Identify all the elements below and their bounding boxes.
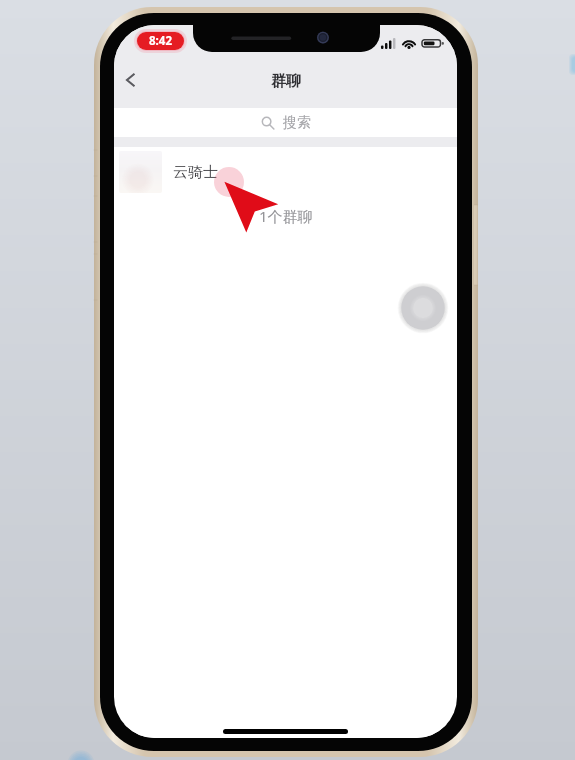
button[interactable]: Recording 8:42 — [137, 32, 184, 50]
staticText: 1个群聊 — [259, 206, 313, 226]
staticText: 云骑士 — [173, 163, 218, 182]
staticText: 8:42 — [149, 33, 172, 49]
button[interactable]: Assistive touch — [398, 283, 448, 333]
button[interactable]: 搜索 — [114, 108, 457, 137]
staticText: 群聊 — [271, 72, 301, 91]
button[interactable]: 云骑士 — [114, 147, 457, 197]
staticText: 搜索 — [283, 114, 311, 132]
button[interactable]: Back — [114, 58, 152, 102]
